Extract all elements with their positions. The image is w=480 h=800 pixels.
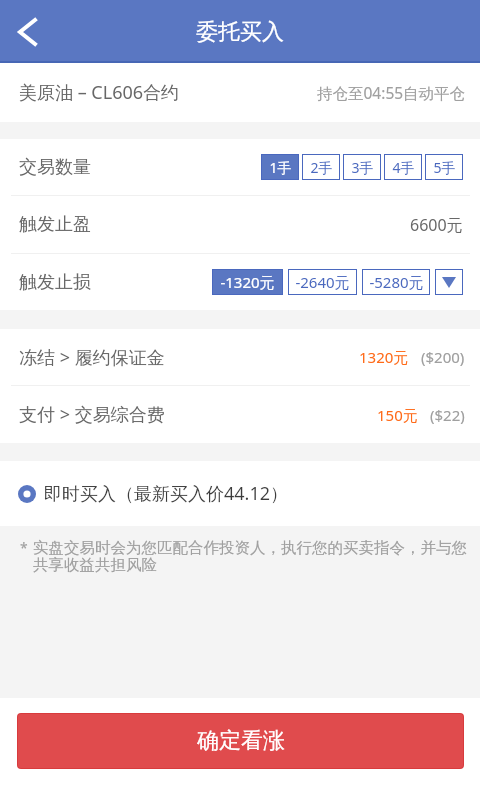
staticText: -5280元 <box>369 272 424 292</box>
staticText: 150元 <box>377 405 418 425</box>
staticText: 1手 <box>269 158 292 177</box>
staticText: 1320元 <box>359 347 409 367</box>
button[interactable]: 确定看涨 <box>18 714 463 768</box>
button[interactable]: 1手 <box>261 154 299 180</box>
staticText: ($22) <box>430 405 465 425</box>
button[interactable]: 3手 <box>343 154 381 180</box>
staticText: 冻结 > 履约保证金 <box>19 345 165 370</box>
staticText: 3手 <box>351 158 374 177</box>
staticText: 委托买入 <box>196 18 284 46</box>
staticText: 2手 <box>310 158 333 177</box>
button[interactable]: -2640元 <box>288 269 357 295</box>
button[interactable]: 4手 <box>384 154 422 180</box>
staticText: 美原油 – CL606合约 <box>19 80 180 105</box>
staticText: 实盘交易时会为您匹配合作投资人，执行您的买卖指令，并与您共享收益共担风险 <box>33 538 472 574</box>
staticText: 6600元 <box>410 214 463 236</box>
staticText: 支付 > 交易综合费 <box>19 402 165 427</box>
staticText: ($200) <box>421 347 465 367</box>
staticText: 持仓至04:55自动平仓 <box>317 82 466 103</box>
staticText: * <box>20 538 28 557</box>
button[interactable]: More options <box>435 269 463 295</box>
staticText: -1320元 <box>220 272 275 292</box>
staticText: 即时买入（最新买入价44.12） <box>44 481 289 506</box>
staticText: -2640元 <box>295 272 350 292</box>
staticText: 触发止盈 <box>19 213 91 236</box>
staticText: 确定看涨 <box>197 727 285 755</box>
staticText: 交易数量 <box>19 156 91 179</box>
staticText: 触发止损 <box>19 271 91 294</box>
button[interactable]: 5手 <box>425 154 463 180</box>
staticText: 5手 <box>433 158 456 177</box>
button[interactable]: -1320元 <box>212 269 283 295</box>
button[interactable]: Back <box>0 0 52 63</box>
button[interactable]: 2手 <box>302 154 340 180</box>
button[interactable]: -5280元 <box>362 269 430 295</box>
button[interactable]: 即时买入（最新买入价44.12） <box>18 461 463 526</box>
staticText: 4手 <box>392 158 415 177</box>
